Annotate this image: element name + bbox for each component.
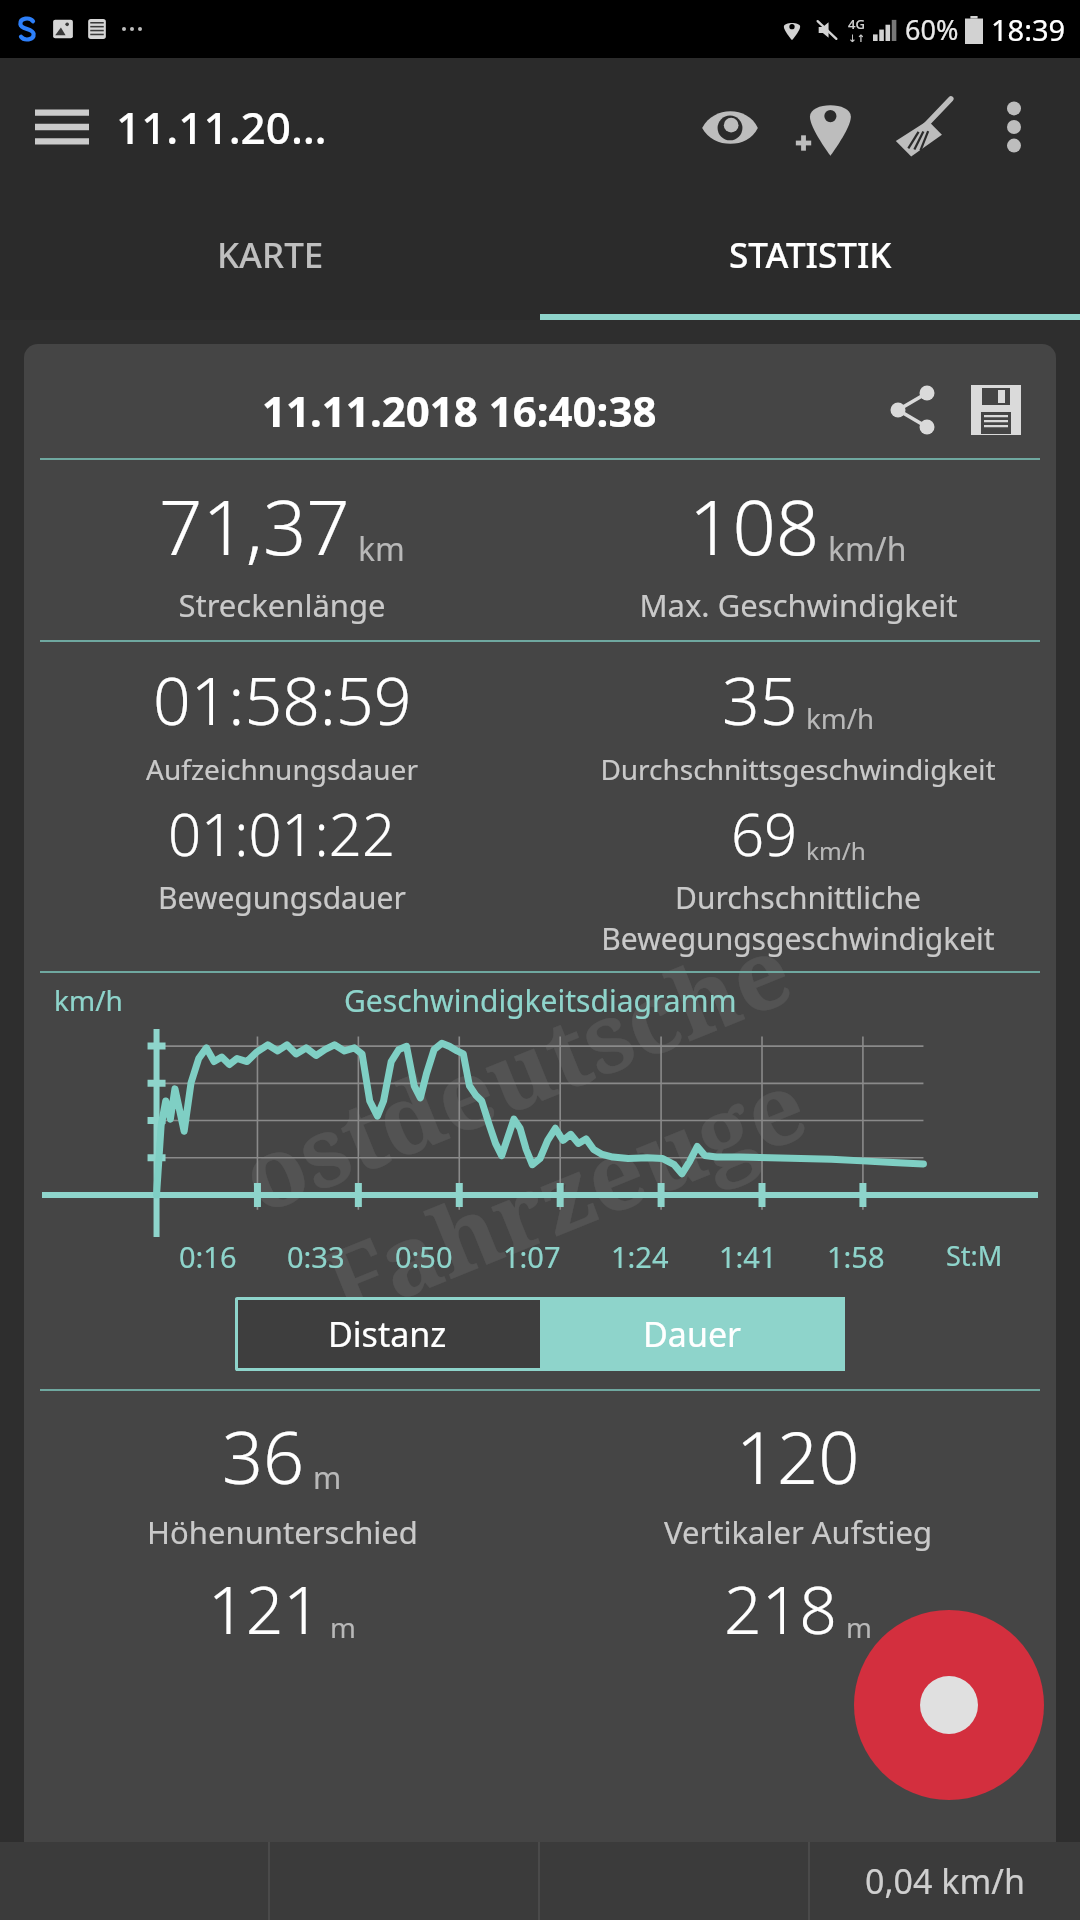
staticText: 0:16 <box>179 1237 237 1276</box>
staticText: Streckenlänge <box>178 584 386 626</box>
staticText: 120 <box>736 1407 860 1505</box>
staticText: KARTE <box>217 231 324 279</box>
staticText: 1:07 <box>503 1237 561 1276</box>
staticText: 1:41 <box>719 1237 777 1276</box>
button[interactable]: STATISTIK <box>540 196 1080 314</box>
staticText: km/h <box>54 981 123 1019</box>
staticText: 0,04 km/h <box>865 1858 1025 1904</box>
staticText: m <box>313 1457 342 1498</box>
staticText: Max. Geschwindigkeit <box>639 584 958 626</box>
button[interactable]: Share <box>874 372 950 448</box>
staticText: km/h <box>806 834 866 867</box>
staticText: 1:24 <box>611 1237 669 1276</box>
staticText: m <box>330 1608 356 1646</box>
staticText: 60% <box>905 11 959 48</box>
staticText: 11.11.20… <box>116 97 327 157</box>
button[interactable]: Add waypoint <box>774 77 874 177</box>
staticText: Aufzeichnungsdauer <box>146 750 418 788</box>
staticText: STATISTIK <box>729 231 892 279</box>
button[interactable]: Save <box>958 372 1034 448</box>
staticText: ↓↑ <box>848 33 865 45</box>
staticText: 71,37 <box>159 474 350 578</box>
staticText: 218 <box>724 1563 838 1653</box>
staticText: 11.11.2018 16:40:38 <box>262 382 657 439</box>
staticText: km <box>358 527 405 570</box>
staticText: 36 <box>222 1407 305 1505</box>
staticText: km/h <box>806 699 875 737</box>
button[interactable]: Clear <box>874 77 974 177</box>
staticText: Vertikaler Aufstieg <box>664 1511 932 1553</box>
staticText: 121 <box>208 1563 322 1653</box>
staticText: 0:50 <box>395 1237 453 1276</box>
staticText: 108 <box>689 474 820 578</box>
staticText: 4G <box>848 15 865 33</box>
staticText: St:M <box>946 1237 1003 1274</box>
staticText: 1:58 <box>827 1237 885 1276</box>
button[interactable]: Menu <box>34 99 90 155</box>
button[interactable]: Distanz <box>235 1297 540 1371</box>
staticText: Fahrzeuge <box>305 1037 825 1348</box>
staticText: 69 <box>731 794 798 873</box>
staticText: Durchschnittliche Bewegungsgeschwindigke… <box>601 877 995 959</box>
staticText: 01:58:59 <box>153 654 412 744</box>
staticText: m <box>846 1608 872 1646</box>
staticText: 0:33 <box>287 1237 345 1276</box>
staticText: Distanz <box>328 1311 447 1357</box>
staticText: 35 <box>722 654 798 744</box>
button[interactable]: Record <box>854 1610 1044 1800</box>
staticText: km/h <box>828 527 907 570</box>
staticText: 01:01:22 <box>168 794 396 873</box>
button[interactable]: Visibility <box>686 83 774 171</box>
staticText: Höhenunterschied <box>147 1511 418 1553</box>
staticText: Bewegungsdauer <box>158 877 406 918</box>
button[interactable]: KARTE <box>0 196 540 314</box>
staticText: Geschwindigkeitsdiagramm <box>344 980 737 1021</box>
button[interactable]: Dauer <box>540 1297 845 1371</box>
staticText: 18:39 <box>991 10 1066 49</box>
staticText: ostdeutsche <box>222 902 809 1241</box>
staticText: Durchschnittsgeschwindigkeit <box>600 750 996 788</box>
button[interactable]: More options <box>974 87 1054 167</box>
staticText: Dauer <box>643 1311 742 1357</box>
